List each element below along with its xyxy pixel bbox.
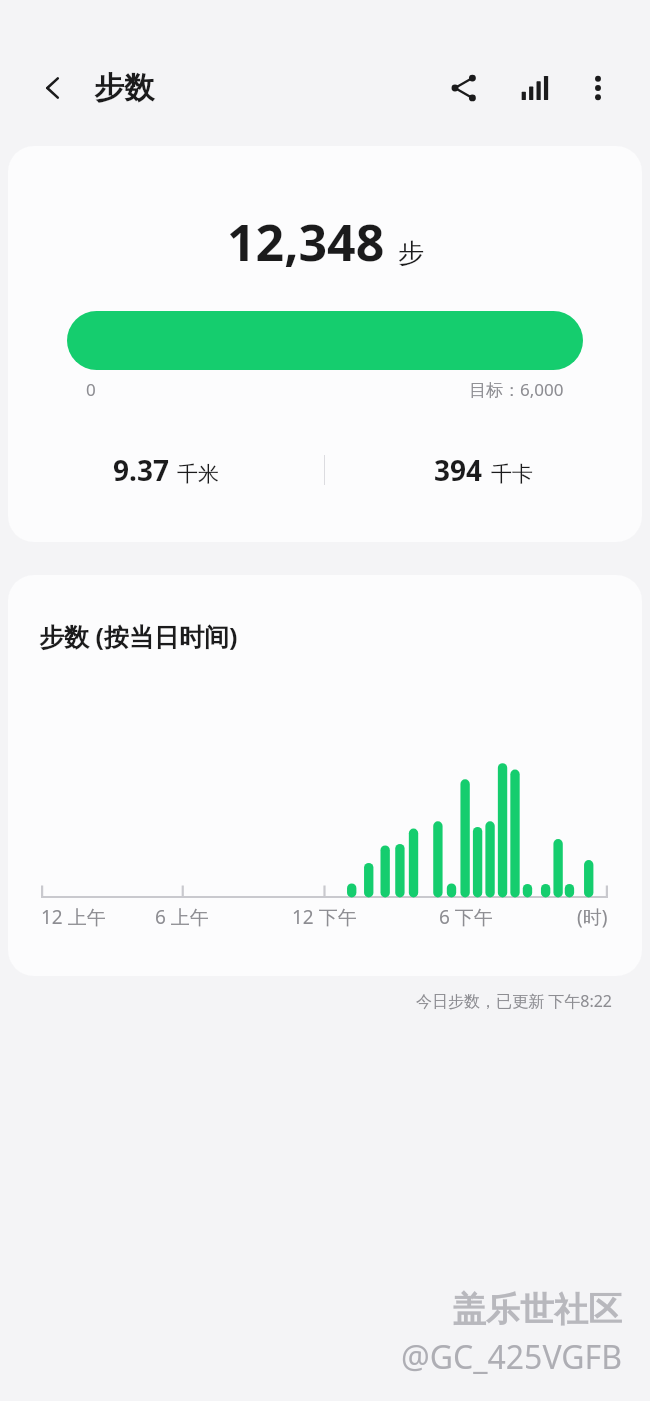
staticText: 0 [86,378,96,401]
staticText: 12 上午 [41,904,106,930]
staticText: 步数 [94,69,154,107]
button[interactable]: Back [30,65,76,111]
button[interactable]: 步数 (按当日时间) [8,575,642,976]
staticText: (时) [577,904,608,930]
button[interactable]: 9.37 [8,451,324,489]
staticText: 6 上午 [155,904,209,930]
staticText: 今日步数，已更新 下午8:22 [0,990,612,1012]
staticText: 12 下午 [292,904,357,930]
staticText: 目标：6,000 [469,378,564,401]
staticText: 千卡 [491,461,533,487]
staticText: 12,348 [227,208,385,276]
button[interactable]: Share [438,62,490,114]
staticText: 盖乐世社区 [452,1288,622,1331]
staticText: 6 下午 [439,904,493,930]
staticText: 步数 (按当日时间) [39,619,238,653]
button[interactable]: 12,348 [8,146,642,542]
button[interactable]: More options [572,62,624,114]
staticText: 394 [434,451,483,489]
staticText: 千米 [177,461,219,487]
button[interactable]: History chart [508,62,560,114]
staticText: 步 [398,237,424,270]
staticText: 9.37 [113,451,169,489]
button[interactable]: 394 [325,451,642,489]
staticText: @GC_425VGFB [401,1335,622,1379]
